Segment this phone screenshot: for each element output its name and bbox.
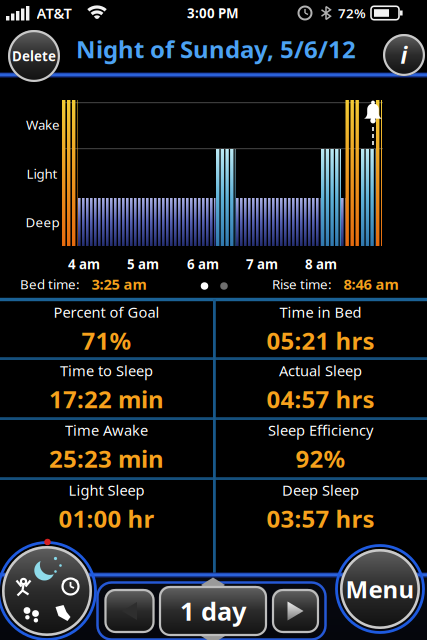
staticText: Time Awake xyxy=(65,420,148,440)
staticText: 4 am xyxy=(68,255,100,273)
staticText: 03:57 hrs xyxy=(266,503,374,534)
staticText: 6 am xyxy=(187,255,219,273)
staticText: 05:21 hrs xyxy=(266,325,374,356)
staticText: Rise time: xyxy=(272,275,332,293)
staticText: 7 am xyxy=(246,255,278,273)
staticText: Sleep Efficiency xyxy=(268,420,373,440)
button[interactable]: Delete xyxy=(8,30,60,82)
staticText: Light Sleep xyxy=(68,480,144,500)
staticText: Time to Sleep xyxy=(60,361,153,380)
staticText: Wake xyxy=(26,116,60,133)
staticText: 8:46 am xyxy=(343,274,398,294)
staticText: 01:00 hr xyxy=(58,503,154,534)
staticText: 5 am xyxy=(127,255,159,273)
staticText: 71% xyxy=(81,325,131,356)
staticText: 17:22 min xyxy=(49,383,164,415)
staticText: 3:25 am xyxy=(91,274,146,294)
staticText: Deep Sleep xyxy=(282,480,359,500)
staticText: AT&T xyxy=(36,3,71,23)
staticText: Deep xyxy=(25,213,59,231)
staticText: Delete xyxy=(12,47,56,65)
staticText: Actual Sleep xyxy=(279,361,362,380)
staticText: Menu xyxy=(345,573,414,605)
button[interactable] xyxy=(104,589,154,633)
staticText: 92% xyxy=(295,443,345,474)
button[interactable]: Menu xyxy=(336,545,424,633)
staticText: Night of Sunday, 5/6/12 xyxy=(76,33,356,65)
staticText: Percent of Goal xyxy=(53,302,159,322)
staticText: 3:00 PM xyxy=(187,4,239,22)
staticText: 1 day xyxy=(180,594,246,628)
button[interactable] xyxy=(272,589,319,633)
staticText: Bed time: xyxy=(20,275,80,293)
button[interactable]: i xyxy=(383,34,425,76)
button[interactable] xyxy=(0,541,96,640)
button[interactable]: 1 day xyxy=(159,586,267,636)
staticText: 72% xyxy=(338,4,366,22)
staticText: 04:57 hrs xyxy=(266,383,374,415)
staticText: Time in Bed xyxy=(279,302,361,322)
staticText: 8 am xyxy=(305,255,337,273)
staticText: 25:23 min xyxy=(49,443,164,474)
staticText: i xyxy=(400,40,407,70)
staticText: Light xyxy=(26,165,57,182)
